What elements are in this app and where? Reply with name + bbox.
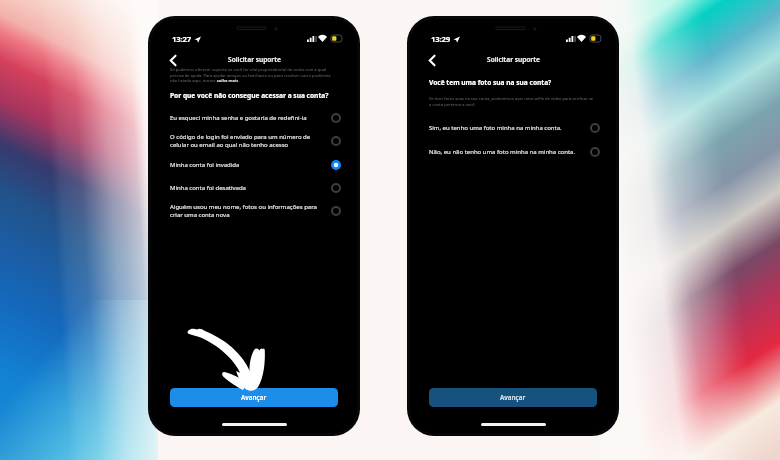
button[interactable]: Não, eu não tenho uma foto minha na minh… (410, 140, 616, 164)
staticText: Avançar (241, 393, 267, 402)
button[interactable]: Avançar (170, 388, 338, 407)
staticText: Eu esqueci minha senha e gostaria de red… (170, 114, 324, 122)
staticText: Você tem uma foto sua na sua conta? (429, 78, 552, 87)
staticText: Só podemos oferecer suporte se você for … (170, 67, 332, 83)
staticText: Solicitar suporte (228, 55, 281, 64)
staticText: 13:27 (172, 34, 192, 45)
button[interactable]: Sim, eu tenho uma foto minha na minha co… (410, 116, 616, 140)
button[interactable]: Back (164, 51, 182, 69)
staticText: Minha conta foi invadida (170, 161, 324, 169)
staticText: O código de login foi enviado para um nú… (170, 133, 324, 149)
staticText: Solicitar suporte (487, 55, 540, 64)
button[interactable]: Eu esqueci minha senha e gostaria de red… (151, 106, 357, 129)
staticText: Minha conta foi desativada (170, 184, 324, 192)
button[interactable]: Minha conta foi desativada (151, 176, 357, 199)
staticText: 13:29 (431, 34, 451, 45)
staticText: Por que você não consegue acessar a sua … (170, 91, 329, 100)
button[interactable]: Minha conta foi invadida (151, 153, 357, 176)
button[interactable]: Alguém usou meu nome, fotos ou informaçõ… (151, 199, 357, 223)
staticText: Avançar (500, 393, 526, 402)
staticText: Sim, eu tenho uma foto minha na minha co… (429, 124, 583, 132)
staticText: Se tiver fotos suas na sua conta, podere… (429, 96, 595, 107)
button[interactable]: Avançar (429, 388, 597, 407)
staticText: Não, eu não tenho uma foto minha na minh… (429, 148, 583, 156)
staticText: Alguém usou meu nome, fotos ou informaçõ… (170, 203, 324, 219)
button[interactable]: O código de login foi enviado para um nú… (151, 129, 357, 153)
button[interactable]: Back (423, 51, 441, 69)
